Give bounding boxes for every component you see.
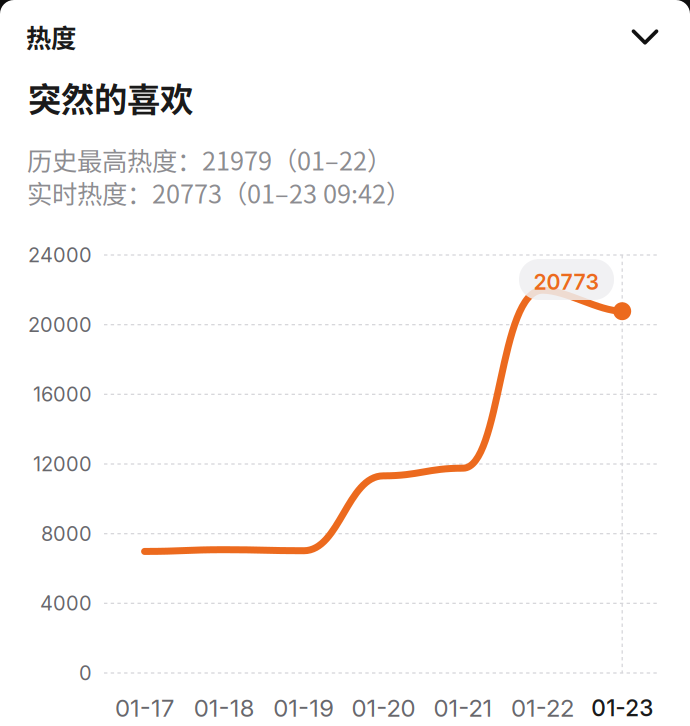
staticText: 01-17 — [115, 693, 174, 722]
button[interactable]: Collapse — [614, 6, 676, 68]
staticText: 01-21 — [433, 693, 492, 722]
button[interactable]: 热度 — [26, 18, 76, 55]
staticText: 01-18 — [194, 693, 255, 722]
staticText: 突然的喜欢 — [28, 73, 193, 121]
staticText: 20773 — [533, 269, 599, 295]
staticText: 历史最高热度：21979（01–22） — [27, 141, 392, 178]
staticText: 01-23 — [591, 694, 653, 722]
staticText: 01-20 — [351, 693, 415, 722]
staticText: 热度 — [26, 18, 76, 55]
staticText: 24000 — [28, 243, 92, 267]
staticText: 实时热度：20773（01–23 09:42） — [27, 174, 411, 211]
staticText: 16000 — [33, 382, 92, 406]
staticText: 0 — [79, 661, 92, 685]
staticText: 12000 — [33, 452, 92, 476]
staticText: 20000 — [28, 313, 92, 337]
staticText: 01-19 — [273, 693, 334, 722]
staticText: 4000 — [40, 591, 92, 615]
staticText: 8000 — [41, 522, 92, 546]
staticText: 01-22 — [511, 693, 574, 722]
